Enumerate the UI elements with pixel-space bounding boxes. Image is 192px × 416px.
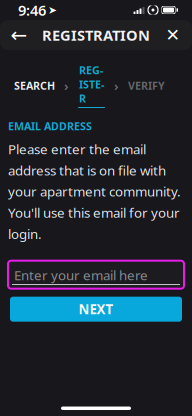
staticText: 9:46 [18, 0, 46, 20]
staticText: EMAIL ADDRESS [8, 119, 92, 133]
staticText: REGISTER [79, 63, 104, 105]
staticText: NEXT [78, 300, 113, 318]
staticText: ✕ [165, 25, 180, 45]
staticText: › [114, 77, 119, 94]
staticText: ← [10, 24, 27, 46]
button[interactable]: NEXT [10, 297, 182, 322]
button[interactable]: Close [156, 20, 190, 50]
staticText: Enter your email here [14, 266, 148, 284]
button[interactable]: SEARCH [14, 78, 55, 93]
staticText: SEARCH [14, 78, 55, 93]
button[interactable]: Back [2, 20, 36, 50]
button[interactable]: REGISTER [78, 63, 105, 108]
button[interactable]: Enter your email here [8, 261, 184, 289]
staticText: VERIFY [128, 78, 165, 93]
staticText: Please enter the email address that is o… [8, 140, 181, 243]
staticText: REGISTRATION [42, 25, 150, 45]
staticText: ➤ [48, 4, 57, 16]
staticText: › [64, 77, 69, 94]
